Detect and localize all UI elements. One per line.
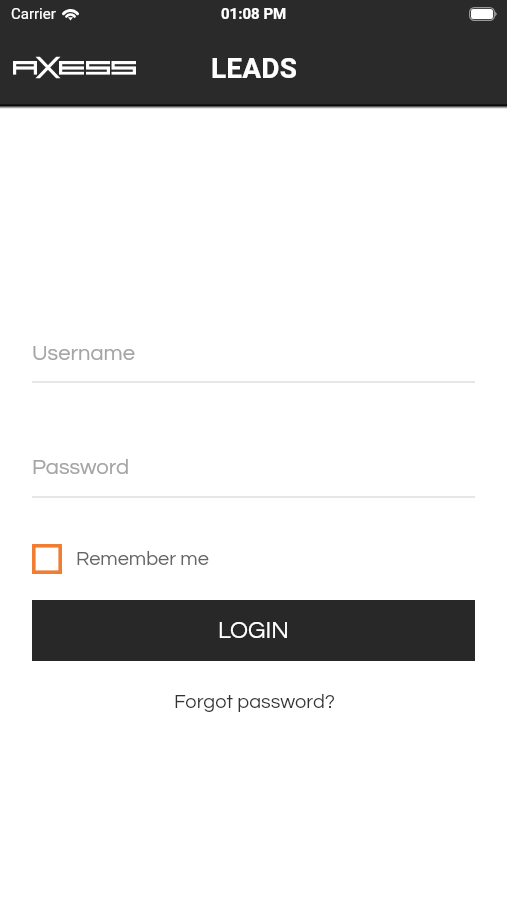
button[interactable]: LOGIN: [32, 600, 475, 661]
staticText: 01:08 PM: [221, 5, 287, 23]
other: Wi-Fi: [60, 6, 81, 20]
staticText: Forgot password?: [174, 692, 336, 713]
staticText: Password: [32, 456, 130, 479]
staticText: LEADS: [211, 52, 298, 85]
other: Battery: [469, 7, 497, 21]
staticText: Username: [32, 342, 135, 365]
staticText: LOGIN: [218, 618, 289, 643]
button[interactable]: AXESS: [13, 53, 136, 79]
staticText: Carrier: [11, 5, 56, 23]
button[interactable]: Forgot password?: [174, 692, 336, 713]
staticText: Remember me: [76, 549, 209, 570]
button[interactable]: Remember me: [32, 544, 209, 574]
